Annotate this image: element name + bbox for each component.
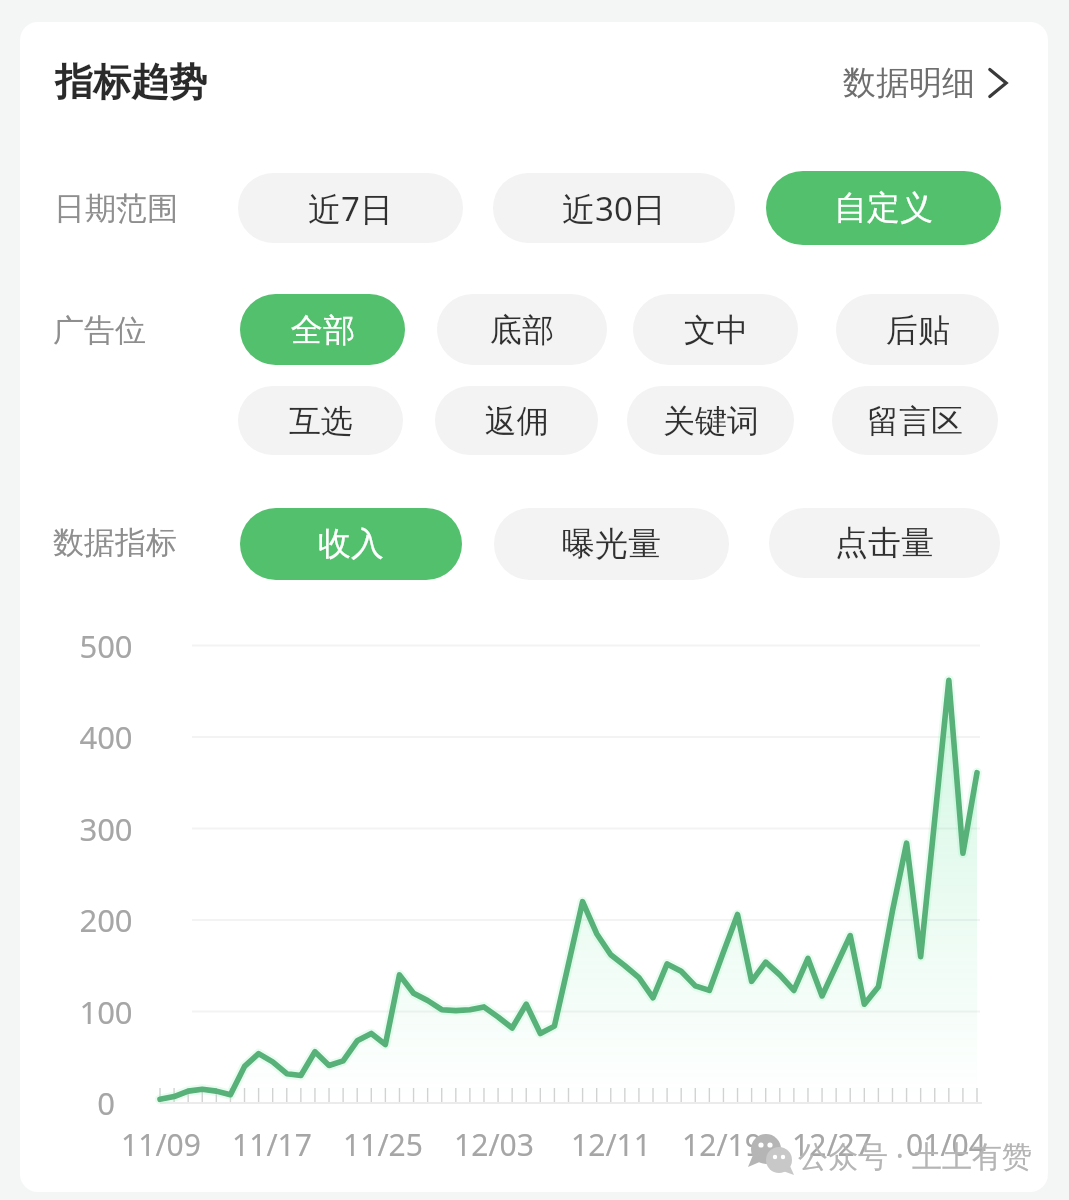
staticText: 12/19 — [652, 1124, 792, 1165]
button[interactable]: 近7日 — [238, 173, 463, 243]
staticText: 留言区 — [867, 401, 963, 441]
staticText: 12/11 — [541, 1124, 681, 1165]
staticText: 500 — [36, 625, 176, 667]
staticText: 11/09 — [91, 1124, 231, 1165]
other: 数据明细 — [988, 66, 1008, 100]
staticText: 11/17 — [202, 1124, 342, 1165]
staticText: 文中 — [684, 310, 748, 350]
staticText: 全部 — [291, 310, 355, 350]
staticText: 公众号 · 土土有赞 — [798, 1135, 1032, 1176]
button[interactable]: 点击量 — [769, 508, 1000, 578]
staticText: 广告位 — [53, 311, 146, 350]
staticText: 收入 — [318, 523, 384, 565]
button[interactable]: 全部 — [240, 294, 405, 365]
button[interactable]: 留言区 — [832, 386, 998, 455]
button[interactable]: 自定义 — [766, 171, 1001, 245]
staticText: 自定义 — [834, 187, 933, 229]
button[interactable]: 关键词 — [627, 386, 794, 455]
staticText: 300 — [36, 808, 176, 850]
staticText: 400 — [36, 716, 176, 758]
button[interactable]: 互选 — [238, 386, 403, 455]
staticText: 底部 — [490, 310, 554, 350]
staticText: 日期范围 — [54, 189, 178, 228]
button[interactable]: 底部 — [437, 294, 607, 365]
staticText: 数据明细 — [843, 62, 975, 104]
staticText: 12/27 — [762, 1124, 902, 1165]
staticText: 11/25 — [313, 1124, 453, 1165]
staticText: 12/03 — [424, 1124, 564, 1165]
staticText: 100 — [36, 991, 176, 1033]
button[interactable]: 曝光量 — [494, 508, 729, 580]
staticText: 数据指标 — [53, 523, 177, 562]
staticText: 返佣 — [485, 401, 549, 441]
button[interactable]: 数据明细 — [843, 62, 1008, 104]
staticText: 近30日 — [562, 186, 666, 231]
staticText: 后贴 — [886, 310, 950, 350]
button[interactable]: 近30日 — [493, 173, 735, 243]
staticText: 关键词 — [663, 401, 759, 441]
button[interactable]: 后贴 — [836, 294, 999, 365]
staticText: 曝光量 — [562, 523, 661, 565]
staticText: 近7日 — [308, 186, 393, 231]
button[interactable]: 收入 — [240, 508, 462, 580]
button[interactable]: 返佣 — [435, 386, 598, 455]
staticText: 点击量 — [835, 522, 934, 564]
button[interactable]: 文中 — [633, 294, 798, 365]
staticText: 互选 — [289, 401, 353, 441]
staticText: 0 — [36, 1082, 176, 1124]
staticText: 200 — [36, 899, 176, 941]
staticText: 01/04 — [876, 1124, 1016, 1165]
staticText: 指标趋势 — [55, 58, 207, 106]
